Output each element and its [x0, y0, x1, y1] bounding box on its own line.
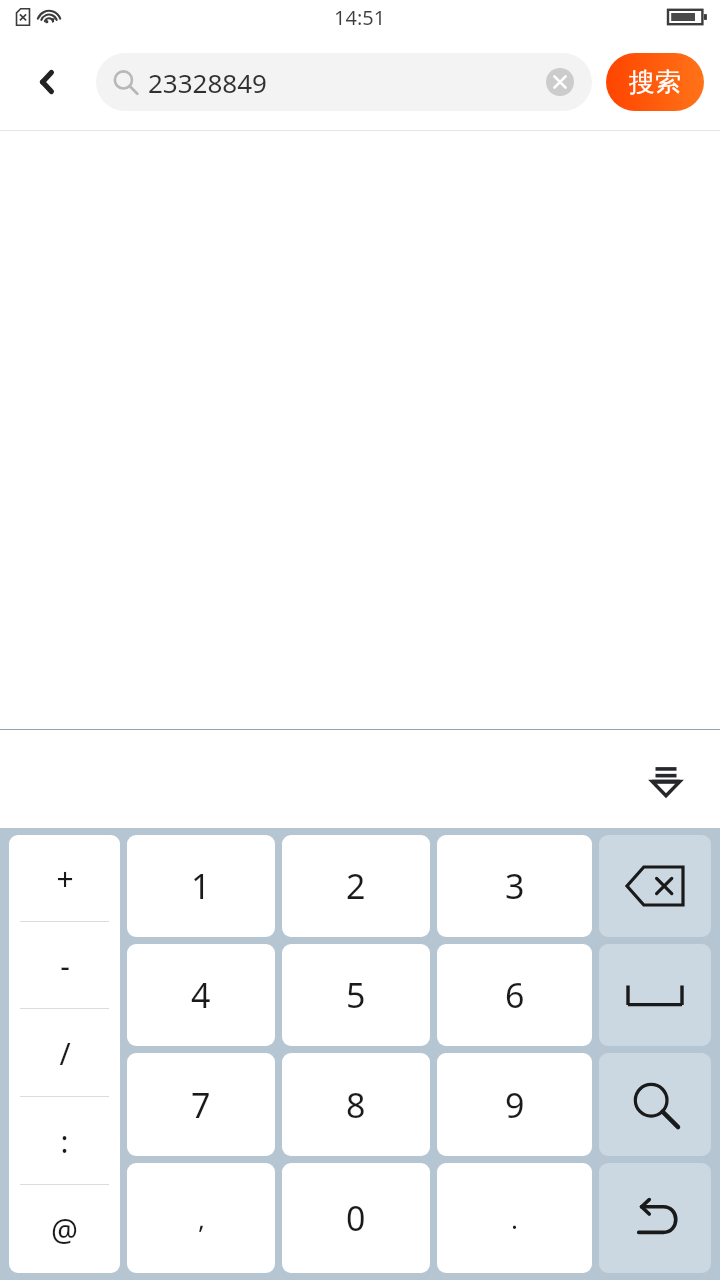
button[interactable]: 0	[282, 1163, 430, 1273]
staticText: @	[51, 1209, 78, 1250]
staticText: ,	[198, 1201, 205, 1236]
button[interactable]: Space	[599, 944, 711, 1046]
button[interactable]: Search	[599, 1053, 711, 1156]
staticText: 搜索	[629, 66, 681, 99]
button[interactable]: 6	[437, 944, 592, 1046]
button[interactable]: .	[437, 1163, 592, 1273]
staticText: 14:51	[334, 4, 386, 31]
button[interactable]: /	[9, 1009, 120, 1097]
staticText: /	[59, 1033, 71, 1074]
button[interactable]: :	[9, 1097, 120, 1185]
button[interactable]: 4	[127, 944, 275, 1046]
staticText: 23328849	[148, 65, 544, 100]
button[interactable]: 2	[282, 835, 430, 937]
staticText: .	[511, 1201, 518, 1236]
staticText: 6	[505, 972, 525, 1018]
staticText: :	[60, 1121, 69, 1162]
staticText: 3	[505, 863, 525, 909]
button[interactable]: Hide keyboard	[638, 751, 694, 807]
staticText: 9	[505, 1082, 525, 1128]
staticText: +	[56, 858, 74, 899]
staticText: 7	[191, 1082, 211, 1128]
button[interactable]: Return	[599, 1163, 711, 1273]
button[interactable]: 23328849	[96, 53, 592, 111]
button[interactable]: @	[9, 1185, 120, 1273]
button[interactable]: 1	[127, 835, 275, 937]
button[interactable]: 5	[282, 944, 430, 1046]
button[interactable]: 7	[127, 1053, 275, 1156]
staticText: 4	[191, 972, 211, 1018]
staticText: 5	[346, 972, 366, 1018]
button[interactable]: 搜索	[606, 53, 704, 111]
button[interactable]: ,	[127, 1163, 275, 1273]
button[interactable]: +	[9, 835, 120, 922]
staticText: 2	[346, 863, 366, 909]
staticText: 0	[346, 1195, 366, 1241]
button[interactable]: Delete	[599, 835, 711, 937]
button[interactable]: 9	[437, 1053, 592, 1156]
button[interactable]: Clear	[544, 66, 576, 98]
button[interactable]: 3	[437, 835, 592, 937]
staticText: -	[60, 945, 70, 986]
button[interactable]: 8	[282, 1053, 430, 1156]
button[interactable]: -	[9, 922, 120, 1009]
button[interactable]: Back	[0, 34, 96, 130]
staticText: 8	[346, 1082, 366, 1128]
staticText: 1	[191, 863, 211, 909]
